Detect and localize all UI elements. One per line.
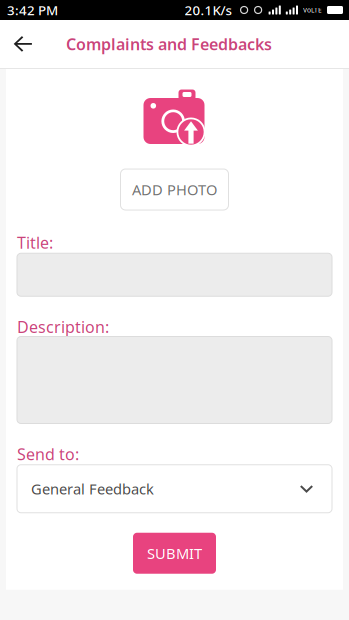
button[interactable]: General Feedback [17,465,332,513]
staticText: VoLTE [303,6,322,14]
staticText: 20.1K/s [185,1,232,19]
staticText: Complaints and Feedbacks [66,33,272,55]
button[interactable]: Back [0,20,46,68]
staticText: 3:42 PM [7,1,58,19]
button[interactable]: ADD PHOTO [120,169,228,210]
staticText: General Feedback [31,479,154,498]
staticText: ADD PHOTO [132,180,217,199]
staticText: Title: [17,232,53,253]
button[interactable]: SUBMIT [133,533,216,574]
staticText: Send to: [17,443,79,465]
staticText: SUBMIT [147,543,202,563]
staticText: Description: [17,316,109,337]
